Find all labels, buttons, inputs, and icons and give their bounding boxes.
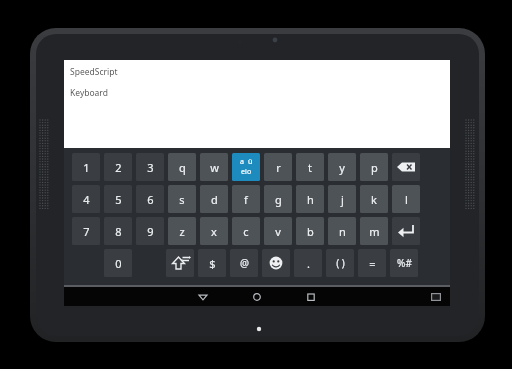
- button[interactable]: 8: [104, 217, 132, 245]
- staticText: e: [241, 167, 245, 177]
- button[interactable]: Recent apps: [294, 287, 328, 306]
- button[interactable]: $: [198, 249, 226, 277]
- button[interactable]: z: [168, 217, 196, 245]
- button[interactable]: w: [200, 153, 228, 181]
- staticText: l: [405, 192, 408, 207]
- staticText: o: [247, 167, 252, 177]
- staticText: z: [179, 224, 185, 239]
- staticText: 2: [115, 160, 122, 175]
- button[interactable]: =: [358, 249, 386, 277]
- staticText: @: [240, 256, 249, 270]
- button[interactable]: x: [200, 217, 228, 245]
- button[interactable]: d: [200, 185, 228, 213]
- staticText: c: [243, 224, 249, 239]
- button[interactable]: b: [296, 217, 324, 245]
- staticText: 9: [147, 224, 154, 239]
- staticText: v: [275, 224, 281, 239]
- button[interactable]: q: [168, 153, 196, 181]
- button[interactable]: v: [264, 217, 292, 245]
- staticText: w: [210, 160, 219, 175]
- button[interactable]: 7: [72, 217, 100, 245]
- staticText: ( ): [336, 256, 345, 270]
- button[interactable]: @: [230, 249, 258, 277]
- staticText: k: [371, 192, 377, 207]
- button[interactable]: m: [360, 217, 388, 245]
- button[interactable]: Switch keyboard: [430, 292, 442, 302]
- button[interactable]: Backspace: [392, 153, 420, 181]
- button[interactable]: p: [360, 153, 388, 181]
- button[interactable]: 9: [136, 217, 164, 245]
- staticText: d: [211, 192, 218, 207]
- button[interactable]: 1: [72, 153, 100, 181]
- staticText: g: [275, 192, 282, 207]
- staticText: j: [341, 192, 344, 207]
- staticText: r: [276, 160, 281, 175]
- button[interactable]: g: [264, 185, 292, 213]
- staticText: SpeedScript: [70, 66, 118, 78]
- button[interactable]: 3: [136, 153, 164, 181]
- staticText: n: [339, 224, 346, 239]
- button[interactable]: Home: [240, 287, 274, 306]
- button[interactable]: Vowels a u e i o: [232, 153, 260, 181]
- staticText: 6: [147, 192, 154, 207]
- button[interactable]: Enter: [392, 217, 420, 245]
- staticText: Keyboard: [70, 87, 108, 99]
- staticText: p: [371, 160, 378, 175]
- staticText: ü: [248, 157, 253, 167]
- button[interactable]: 4: [72, 185, 100, 213]
- staticText: .: [307, 256, 310, 271]
- button[interactable]: 0: [104, 249, 132, 277]
- button[interactable]: k: [360, 185, 388, 213]
- staticText: $: [209, 256, 216, 271]
- button[interactable]: y: [328, 153, 356, 181]
- staticText: 1: [83, 160, 90, 175]
- staticText: =: [369, 256, 376, 271]
- staticText: a: [240, 157, 244, 167]
- button[interactable]: t: [296, 153, 324, 181]
- staticText: 3: [147, 160, 154, 175]
- staticText: h: [307, 192, 314, 207]
- staticText: f: [244, 192, 248, 207]
- staticText: 4: [83, 192, 90, 207]
- staticText: 0: [115, 256, 122, 271]
- button[interactable]: r: [264, 153, 292, 181]
- button[interactable]: %#: [390, 249, 418, 277]
- staticText: y: [339, 160, 345, 175]
- button[interactable]: f: [232, 185, 260, 213]
- button[interactable]: h: [296, 185, 324, 213]
- button[interactable]: Shift Tab: [166, 249, 194, 277]
- button[interactable]: j: [328, 185, 356, 213]
- button[interactable]: Back: [186, 287, 220, 306]
- staticText: i: [245, 167, 247, 177]
- staticText: b: [307, 224, 314, 239]
- button[interactable]: c: [232, 217, 260, 245]
- staticText: s: [179, 192, 185, 207]
- button[interactable]: s: [168, 185, 196, 213]
- staticText: t: [308, 160, 312, 175]
- button[interactable]: n: [328, 217, 356, 245]
- button[interactable]: Emoji: [262, 249, 290, 277]
- staticText: x: [211, 224, 217, 239]
- staticText: 7: [83, 224, 90, 239]
- button[interactable]: ( ): [326, 249, 354, 277]
- staticText: q: [179, 160, 186, 175]
- button[interactable]: .: [294, 249, 322, 277]
- button[interactable]: 2: [104, 153, 132, 181]
- button[interactable]: 5: [104, 185, 132, 213]
- staticText: m: [369, 224, 380, 239]
- button[interactable]: 6: [136, 185, 164, 213]
- staticText: 8: [115, 224, 122, 239]
- staticText: 5: [115, 192, 122, 207]
- staticText: %#: [397, 256, 412, 270]
- button[interactable]: l: [392, 185, 420, 213]
